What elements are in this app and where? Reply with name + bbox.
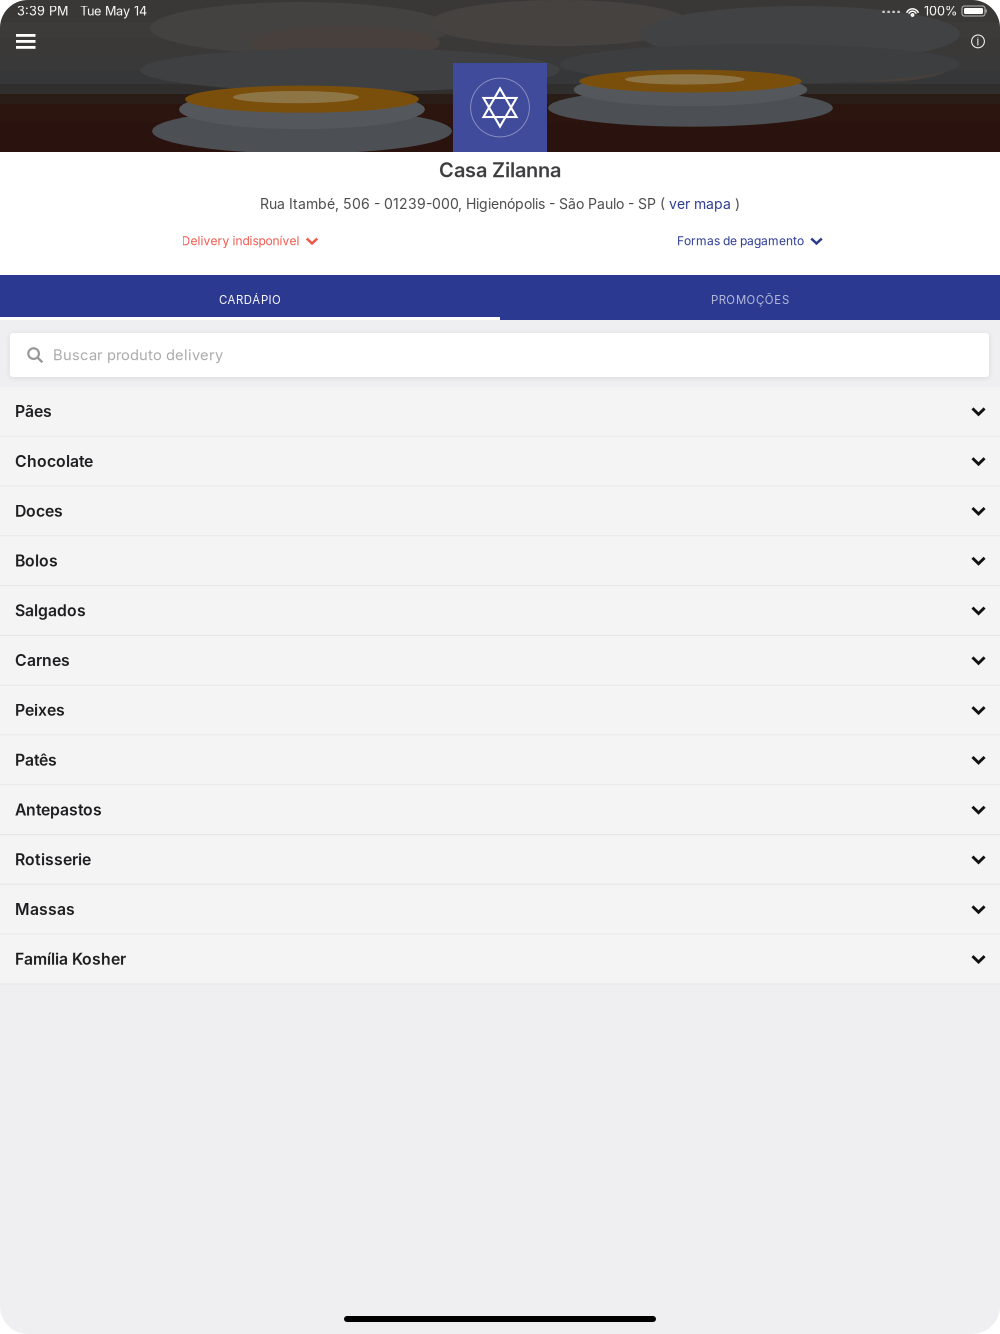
button[interactable]: Information bbox=[962, 25, 994, 57]
staticText: Peixes bbox=[15, 701, 65, 720]
button[interactable]: Família Kosher bbox=[0, 935, 1000, 984]
staticText: Antepastos bbox=[15, 800, 102, 819]
button[interactable]: PROMOÇÕES bbox=[500, 275, 1000, 320]
staticText: Formas de pagamento bbox=[677, 234, 804, 248]
staticText: 100% bbox=[924, 3, 957, 19]
button[interactable]: Formas de pagamento bbox=[500, 228, 1000, 254]
staticText: Doces bbox=[15, 501, 63, 520]
button[interactable]: Rotisserie bbox=[0, 835, 1000, 885]
staticText: Rua Itambé, 506 - 01239-000, Higienópoli… bbox=[260, 195, 669, 212]
button[interactable]: Doces bbox=[0, 487, 1000, 536]
staticText: ver mapa bbox=[669, 195, 731, 212]
staticText: Buscar produto delivery bbox=[53, 346, 223, 364]
staticText: Salgados bbox=[15, 601, 86, 620]
button[interactable]: Carnes bbox=[0, 636, 1000, 686]
button[interactable]: Antepastos bbox=[0, 785, 1000, 835]
button[interactable]: ver mapa bbox=[669, 195, 731, 212]
button[interactable]: Chocolate bbox=[0, 437, 1000, 487]
staticText: Carnes bbox=[15, 651, 70, 670]
staticText: Tue May 14 bbox=[68, 3, 147, 19]
staticText: Pães bbox=[15, 402, 52, 421]
staticText: CARDÁPIO bbox=[219, 293, 281, 307]
button[interactable]: CARDÁPIO bbox=[0, 275, 500, 320]
staticText: Bolos bbox=[15, 551, 58, 570]
staticText: Patês bbox=[15, 750, 57, 769]
staticText: i bbox=[976, 34, 979, 48]
staticText: Delivery indisponível bbox=[181, 234, 299, 248]
staticText: Chocolate bbox=[15, 452, 93, 471]
button[interactable]: Peixes bbox=[0, 686, 1000, 735]
button[interactable]: Bolos bbox=[0, 536, 1000, 586]
button[interactable]: Salgados bbox=[0, 586, 1000, 636]
button[interactable]: Delivery indisponível bbox=[0, 228, 500, 254]
staticText: Casa Zilanna bbox=[439, 158, 561, 182]
button[interactable]: Menu bbox=[6, 24, 45, 59]
staticText: •••• bbox=[881, 5, 901, 17]
button[interactable]: Patês bbox=[0, 735, 1000, 785]
staticText: Família Kosher bbox=[15, 950, 126, 969]
staticText: Rotisserie bbox=[15, 850, 91, 869]
staticText: PROMOÇÕES bbox=[711, 293, 789, 307]
button[interactable]: Pães bbox=[0, 387, 1000, 437]
staticText: Massas bbox=[15, 900, 75, 919]
staticText: ) bbox=[731, 195, 740, 212]
button[interactable]: Massas bbox=[0, 885, 1000, 935]
staticText: 3:39 PM bbox=[17, 3, 68, 19]
